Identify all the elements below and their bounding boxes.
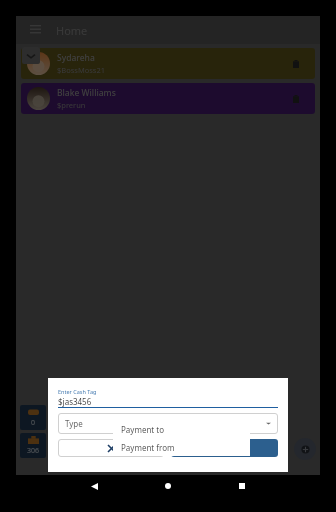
button[interactable]: Open navigation menu [26, 21, 44, 39]
button[interactable]: Blake Williams [21, 83, 315, 114]
staticText: $jas3456 [58, 396, 92, 407]
staticText: 306 [20, 446, 46, 456]
staticText: Sydareha [57, 52, 95, 64]
button[interactable]: Delete Sydareha [285, 53, 307, 75]
staticText: Type [65, 418, 83, 429]
button[interactable]: Coins 306 [20, 433, 46, 458]
button[interactable]: Sydareha [21, 48, 315, 79]
button[interactable]: Recent apps [227, 475, 257, 497]
button[interactable]: Expand [22, 47, 40, 64]
button[interactable]: Payment to [113, 420, 250, 438]
button[interactable]: Confirm [171, 439, 278, 457]
staticText: Home [56, 23, 88, 38]
staticText: 0 [20, 418, 46, 428]
staticText: Payment to [121, 424, 165, 435]
button[interactable]: Home [153, 475, 183, 497]
staticText: $prerun [57, 100, 86, 110]
button[interactable] [58, 439, 164, 457]
button[interactable]: Delete Blake Williams [285, 88, 307, 110]
staticText: $BossMoss21 [57, 65, 105, 75]
button[interactable]: Payment from [113, 438, 250, 456]
staticText: Enter Cash Tag [58, 388, 97, 395]
button[interactable]: Items 0 [20, 405, 46, 430]
button[interactable]: Enter Cash Tag [58, 386, 278, 408]
staticText: Blake Williams [57, 87, 116, 99]
button[interactable]: Back [79, 475, 109, 497]
button[interactable]: Add [294, 438, 316, 460]
staticText: Payment from [121, 442, 175, 453]
button[interactable]: Type [58, 413, 278, 434]
